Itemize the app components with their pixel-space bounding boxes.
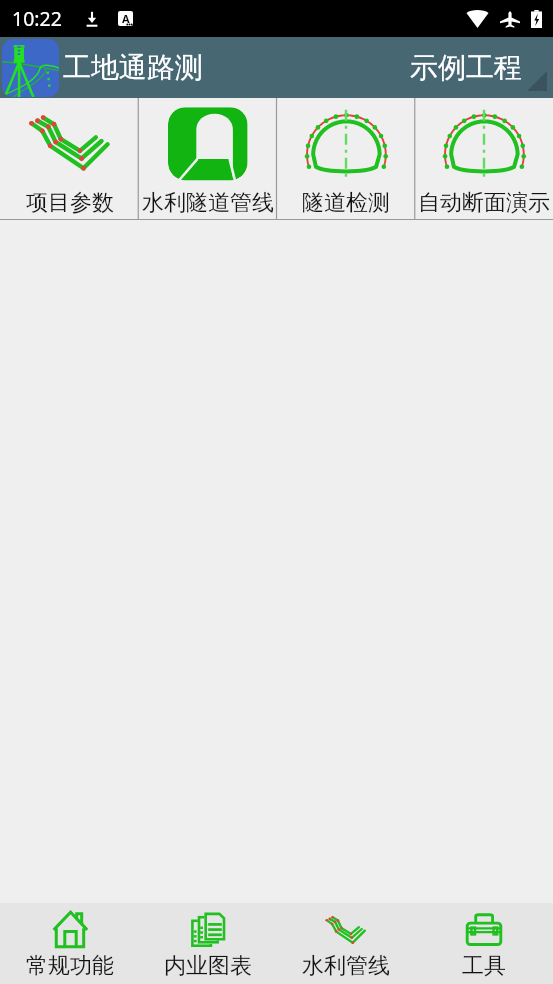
button[interactable]: App logo (2, 39, 59, 97)
button[interactable]: 内业图表 (139, 903, 277, 984)
button[interactable]: 常规功能 (0, 903, 139, 984)
staticText: 水利隧道管线 (142, 189, 274, 217)
button[interactable]: 水利管线 (277, 903, 415, 984)
staticText: 示例工程 (410, 50, 522, 85)
staticText: 10:22 (12, 5, 62, 32)
staticText: 项目参数 (26, 189, 114, 217)
button[interactable]: 水利隧道管线 (139, 98, 277, 219)
button[interactable]: 工具 (415, 903, 553, 984)
staticText: 隧道检测 (302, 189, 390, 217)
staticText: 水利管线 (302, 952, 390, 980)
button[interactable]: 隧道检测 (277, 98, 415, 219)
staticText: 内业图表 (164, 952, 252, 980)
staticText: A (122, 11, 130, 26)
button[interactable]: 项目参数 (0, 98, 139, 219)
staticText: 常规功能 (26, 952, 114, 980)
staticText: 工地通路测 (63, 50, 203, 85)
staticText: 自动断面演示 (418, 189, 550, 217)
staticText: 工具 (462, 952, 506, 980)
button[interactable]: 自动断面演示 (415, 98, 553, 219)
